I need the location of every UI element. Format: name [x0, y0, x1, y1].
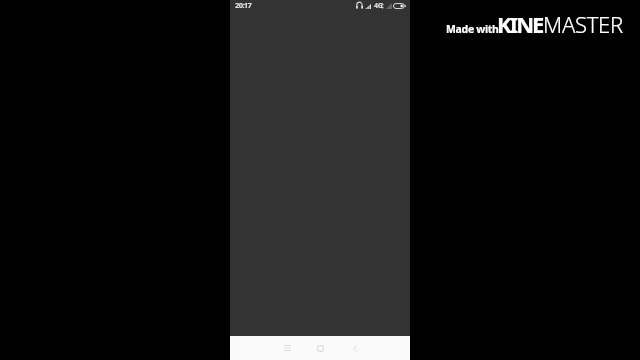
- staticText: MASTER: [543, 9, 623, 39]
- staticText: Made with: [446, 22, 499, 36]
- staticText: 4G: [374, 1, 383, 11]
- staticText: KINE: [497, 9, 543, 39]
- staticText: 20:17: [235, 0, 252, 10]
- button[interactable]: Home: [308, 336, 332, 360]
- button[interactable]: Recent apps: [275, 336, 299, 360]
